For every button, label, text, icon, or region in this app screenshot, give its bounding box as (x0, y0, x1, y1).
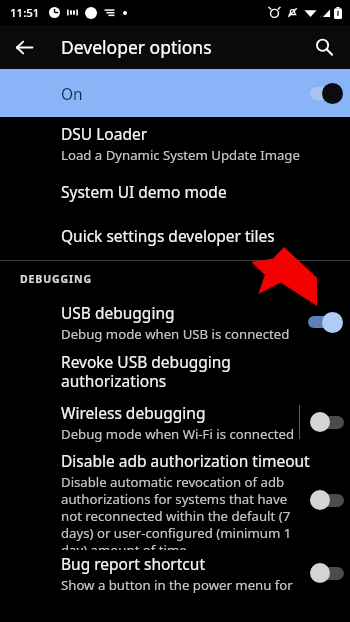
staticText: DEBUGGING (20, 272, 93, 286)
button[interactable]: Bug report shortcut (0, 550, 350, 596)
staticText: Bug report shortcut (61, 553, 205, 574)
button[interactable]: DSU Loader (0, 117, 350, 169)
staticText: Developer options (61, 35, 212, 59)
staticText: Wireless debugging (61, 402, 206, 423)
button[interactable]: USB debugging (0, 296, 350, 348)
button[interactable]: Wireless debugging (0, 394, 350, 450)
staticText: Disable automatic revocation of adb auth… (61, 473, 310, 550)
button[interactable]: Search (307, 30, 341, 64)
staticText: Disable adb authorization timeout (61, 450, 310, 471)
button[interactable]: Back (7, 30, 41, 64)
button[interactable]: Disable adb authorization timeout (0, 450, 350, 550)
staticText: Revoke USB debugging authorizations (61, 351, 336, 391)
staticText: 11:51 (10, 5, 40, 21)
button[interactable]: Quick settings developer tiles (0, 213, 350, 257)
staticText: System UI demo mode (61, 181, 227, 202)
staticText: On (61, 83, 83, 104)
staticText: DSU Loader (61, 123, 148, 144)
staticText: Load a Dynamic System Update Image (61, 146, 300, 164)
staticText: Show a button in the power menu for (61, 576, 293, 594)
button[interactable]: On (0, 69, 350, 117)
button[interactable]: System UI demo mode (0, 169, 350, 213)
staticText: Debug mode when USB is connected (61, 325, 290, 343)
staticText: Debug mode when Wi-Fi is connected (61, 425, 295, 443)
button[interactable]: Revoke USB debugging authorizations (0, 348, 350, 394)
staticText: Quick settings developer tiles (61, 225, 275, 246)
staticText: USB debugging (61, 302, 175, 323)
